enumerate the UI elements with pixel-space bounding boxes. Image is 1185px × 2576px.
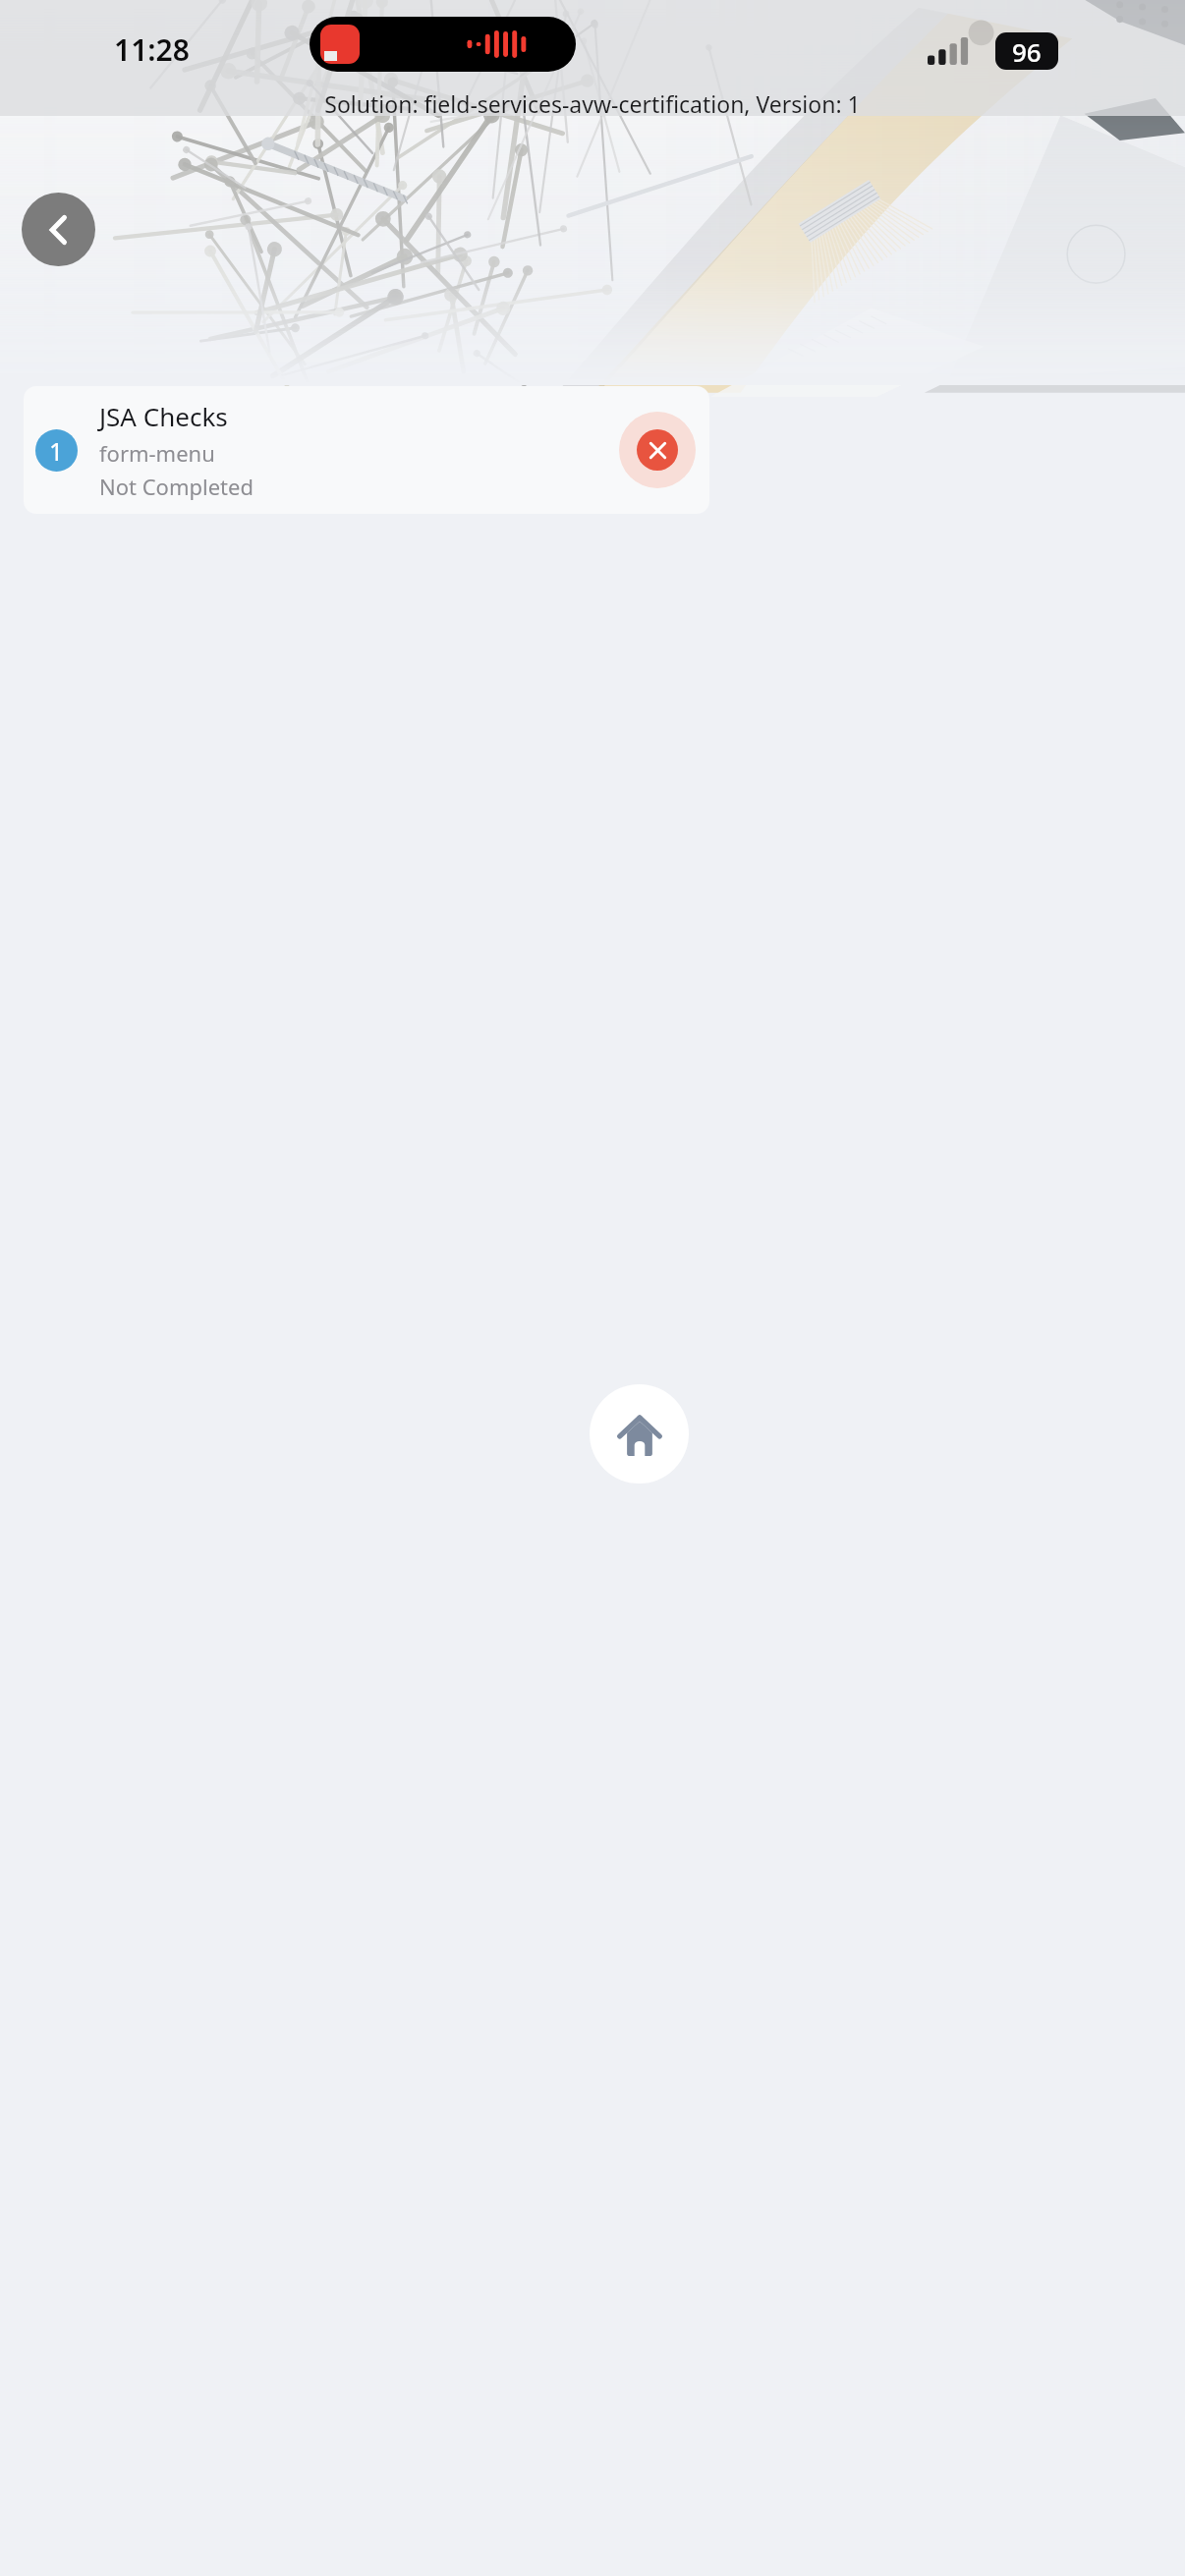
staticText: JSA Checks xyxy=(99,399,228,433)
button[interactable]: Back xyxy=(22,193,95,266)
button[interactable]: Not completed xyxy=(619,412,696,488)
staticText: 1 xyxy=(49,434,64,468)
button[interactable]: 1 xyxy=(24,386,709,514)
staticText: form-menu xyxy=(99,438,215,468)
button[interactable]: Home xyxy=(590,1384,689,1484)
staticText: 11:28 xyxy=(114,29,190,70)
staticText: Solution: field-services-avw-certificati… xyxy=(0,88,1185,119)
staticText: Not Completed xyxy=(99,472,254,501)
staticText: Checklist xyxy=(24,373,206,428)
staticText: 96 xyxy=(1012,34,1042,69)
